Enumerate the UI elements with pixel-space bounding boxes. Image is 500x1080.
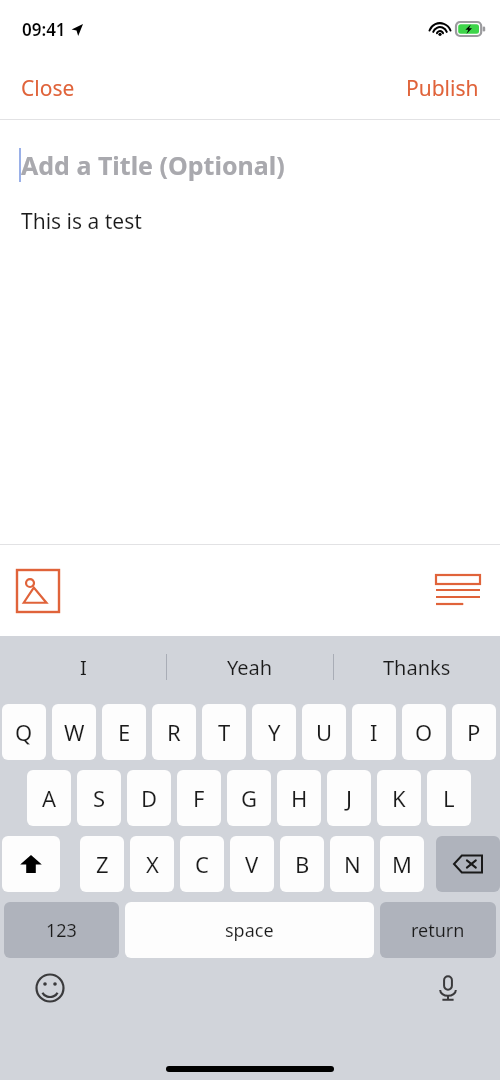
button[interactable]: T	[202, 704, 246, 760]
button[interactable]: Delete	[436, 836, 500, 892]
button[interactable]: Publish	[393, 66, 492, 111]
button[interactable]: S	[77, 770, 121, 826]
button[interactable]: O	[402, 704, 446, 760]
button[interactable]: V	[230, 836, 274, 892]
button[interactable]: J	[327, 770, 371, 826]
button[interactable]: space	[125, 902, 374, 958]
staticText: Publish	[406, 74, 479, 103]
button[interactable]: W	[52, 704, 96, 760]
staticText: return	[411, 918, 465, 943]
button[interactable]: P	[452, 704, 496, 760]
button[interactable]: return	[380, 902, 496, 958]
button[interactable]: B	[280, 836, 324, 892]
staticText: T	[218, 717, 231, 747]
button[interactable]: Close	[8, 66, 88, 111]
staticText: 123	[46, 918, 77, 943]
staticText: This is a test	[21, 207, 142, 236]
staticText: Yeah	[227, 654, 273, 681]
staticText: A	[42, 783, 57, 813]
staticText: Add a Title (Optional)	[21, 148, 285, 182]
staticText: 09:41	[22, 18, 66, 41]
button[interactable]: U	[302, 704, 346, 760]
button[interactable]: A	[27, 770, 71, 826]
staticText: F	[193, 783, 205, 813]
button[interactable]: R	[152, 704, 196, 760]
staticText: I	[80, 654, 87, 681]
button[interactable]: F	[177, 770, 221, 826]
staticText: K	[392, 783, 406, 813]
button[interactable]: Z	[80, 836, 124, 892]
staticText: C	[195, 849, 209, 879]
staticText: O	[415, 717, 433, 747]
staticText: G	[241, 783, 258, 813]
staticText: W	[64, 717, 85, 747]
button[interactable]: C	[180, 836, 224, 892]
staticText: H	[291, 783, 308, 813]
button[interactable]: Q	[2, 704, 46, 760]
staticText: Thanks	[383, 654, 451, 681]
staticText: X	[146, 849, 159, 879]
staticText: D	[141, 783, 158, 813]
button[interactable]: Thanks	[334, 636, 500, 698]
button[interactable]: Dictation	[428, 968, 468, 1008]
staticText: N	[344, 849, 361, 879]
button[interactable]: Yeah	[167, 636, 333, 698]
staticText: R	[167, 717, 181, 747]
staticText: B	[295, 849, 310, 879]
button[interactable]: E	[102, 704, 146, 760]
button[interactable]: Formatting options	[432, 565, 484, 617]
button[interactable]: K	[377, 770, 421, 826]
staticText: Q	[15, 717, 33, 747]
staticText: Z	[96, 849, 109, 879]
staticText: L	[443, 783, 455, 813]
staticText: P	[467, 717, 481, 747]
button[interactable]: M	[380, 836, 424, 892]
staticText: space	[225, 918, 274, 943]
button[interactable]: Add a Title (Optional)	[21, 148, 285, 182]
button[interactable]: 123	[4, 902, 119, 958]
staticText: V	[245, 849, 259, 879]
staticText: S	[93, 783, 106, 813]
button[interactable]: X	[130, 836, 174, 892]
button[interactable]: G	[227, 770, 271, 826]
button[interactable]: I	[0, 636, 166, 698]
button[interactable]: I	[352, 704, 396, 760]
button[interactable]: Emoji	[30, 968, 70, 1008]
button[interactable]: H	[277, 770, 321, 826]
button[interactable]: N	[330, 836, 374, 892]
button[interactable]: This is a test	[0, 207, 500, 236]
staticText: Close	[21, 74, 75, 103]
button[interactable]: D	[127, 770, 171, 826]
staticText: E	[118, 717, 131, 747]
staticText: Y	[268, 717, 281, 747]
button[interactable]: Shift	[2, 836, 60, 892]
staticText: I	[370, 717, 378, 747]
button[interactable]: L	[427, 770, 471, 826]
staticText: U	[316, 717, 333, 747]
staticText: M	[392, 849, 412, 879]
button[interactable]: Insert image	[10, 563, 66, 619]
button[interactable]: Y	[252, 704, 296, 760]
staticText: J	[346, 783, 353, 813]
